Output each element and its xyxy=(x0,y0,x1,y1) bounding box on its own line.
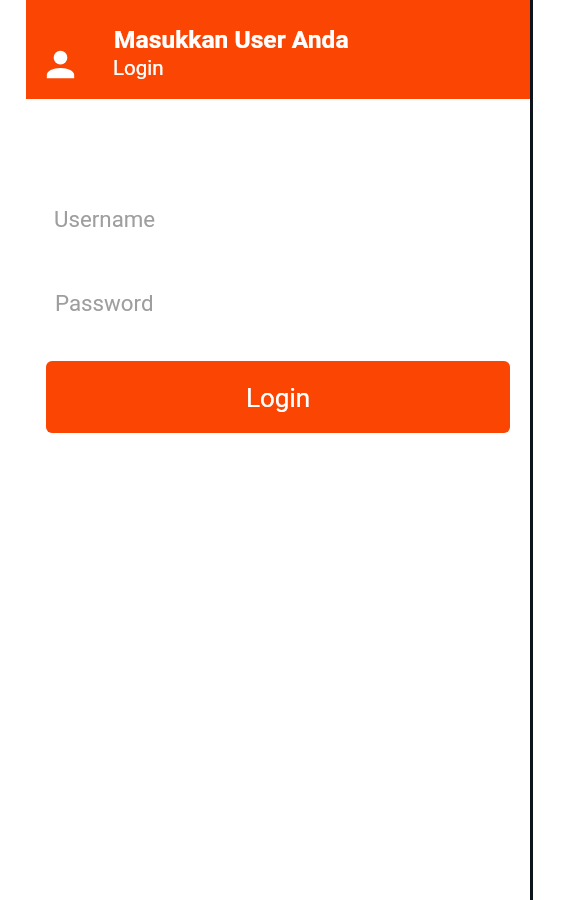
staticText: Login xyxy=(246,383,311,413)
staticText: Password xyxy=(55,290,154,316)
button[interactable]: Password xyxy=(46,272,510,328)
button[interactable]: Username xyxy=(46,188,510,244)
staticText: Username xyxy=(54,206,156,232)
staticText: Login xyxy=(113,56,164,80)
button[interactable]: Login xyxy=(46,361,510,433)
button[interactable]: Account xyxy=(35,39,86,90)
staticText: Masukkan User Anda xyxy=(114,25,349,54)
